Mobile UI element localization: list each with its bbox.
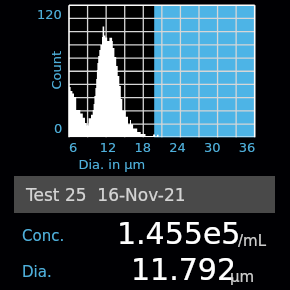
button[interactable]: Particle analysis result — [0, 0, 290, 290]
